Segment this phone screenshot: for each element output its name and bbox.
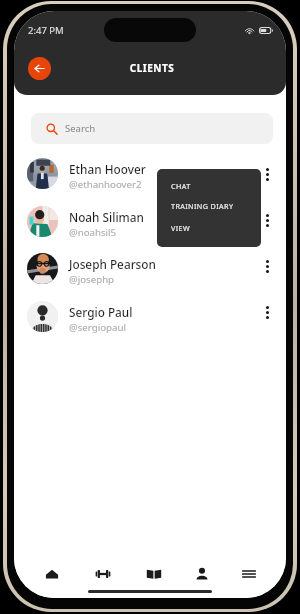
button[interactable]: Workouts — [87, 558, 119, 590]
staticText: Joseph Pearson — [69, 256, 156, 272]
staticText: Noah Siliman — [69, 209, 144, 225]
staticText: TRAINING DIARY — [171, 201, 234, 211]
button[interactable]: Back — [28, 57, 51, 80]
button[interactable]: Ethan Hoover — [14, 150, 286, 197]
button[interactable]: VIEW — [157, 220, 261, 236]
staticText: 2:47 PM — [28, 24, 64, 37]
staticText: @sergiopaul — [69, 321, 126, 334]
staticText: Search — [65, 122, 96, 135]
staticText: CHAT — [171, 181, 191, 191]
staticText: @josephp — [69, 273, 115, 286]
button[interactable]: Joseph Pearson — [14, 245, 286, 292]
staticText: CLIENTS — [16, 61, 286, 75]
button[interactable]: More options — [256, 301, 278, 323]
button[interactable]: More options — [256, 209, 278, 231]
button[interactable]: CHAT — [157, 178, 261, 194]
staticText: Ethan Hoover — [69, 161, 146, 177]
button[interactable]: Diary — [138, 558, 170, 590]
button[interactable]: More options — [256, 163, 278, 185]
staticText: @noahsil5 — [69, 226, 117, 239]
staticText: VIEW — [171, 223, 191, 233]
button[interactable]: Search — [31, 113, 273, 144]
button[interactable]: Menu — [233, 558, 265, 590]
button[interactable]: More options — [256, 255, 278, 277]
staticText: Sergio Paul — [69, 304, 133, 320]
button[interactable]: Clients — [186, 558, 218, 590]
button[interactable]: Sergio Paul — [14, 293, 286, 340]
button[interactable]: Noah Siliman — [14, 198, 286, 245]
button[interactable]: TRAINING DIARY — [157, 198, 261, 214]
staticText: @ethanhoover2 — [69, 178, 142, 191]
button[interactable]: Home — [36, 558, 68, 590]
